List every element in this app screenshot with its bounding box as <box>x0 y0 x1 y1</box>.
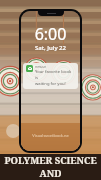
staticText: Your favorite book is <box>35 69 75 81</box>
button[interactable]: mmuun <box>23 63 78 89</box>
staticText: 6:00 <box>21 23 80 45</box>
staticText: Visualsvoetbook.ne <box>21 133 80 138</box>
button[interactable]: POLYMER SCIENCE AND <box>0 154 101 180</box>
staticText: Sat, July 22 <box>21 44 80 52</box>
staticText: POLYMER SCIENCE AND <box>0 154 101 180</box>
staticText: mmuun <box>35 65 47 69</box>
staticText: waiting for you! <box>35 81 66 87</box>
